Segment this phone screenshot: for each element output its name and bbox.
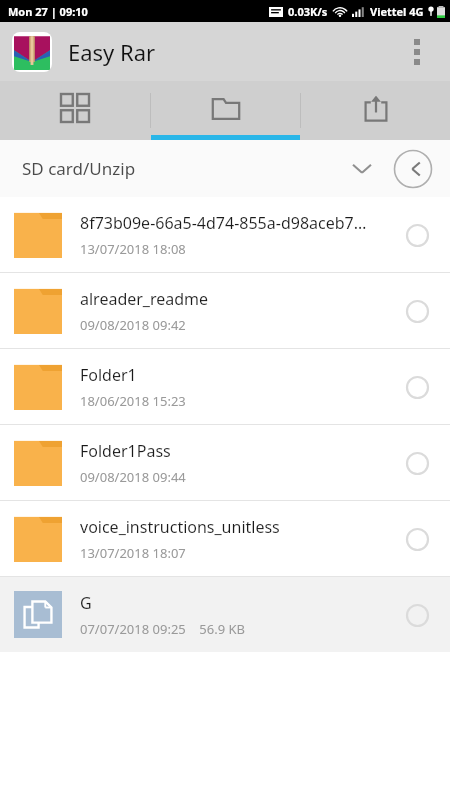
staticText: Viettel 4G bbox=[370, 4, 424, 19]
button[interactable]: Folders bbox=[151, 81, 300, 140]
button[interactable]: Grid view bbox=[0, 81, 150, 140]
button[interactable]: Folder1 bbox=[0, 349, 450, 424]
staticText: Folder1Pass bbox=[80, 440, 171, 462]
button[interactable]: Select Folder1 bbox=[396, 366, 438, 408]
staticText: 0.03K/s bbox=[288, 4, 328, 19]
button[interactable]: Select G bbox=[396, 594, 438, 636]
button[interactable]: Select 8f73b09e-66a5-4d74-855a-d98aceb7… bbox=[396, 214, 438, 256]
button[interactable]: More options bbox=[396, 31, 438, 73]
button[interactable]: Select alreader_readme bbox=[396, 290, 438, 332]
button[interactable]: Select Folder1Pass bbox=[396, 442, 438, 484]
staticText: 18/06/2018 15:23 bbox=[80, 392, 186, 410]
button[interactable] bbox=[12, 32, 52, 72]
staticText: SD card/Unzip bbox=[22, 157, 136, 180]
staticText: 09/08/2018 09:42 bbox=[80, 316, 186, 334]
staticText: 13/07/2018 18:07 bbox=[80, 544, 186, 562]
button[interactable]: Select voice_instructions_unitless bbox=[396, 518, 438, 560]
staticText: G bbox=[80, 592, 92, 614]
staticText: voice_instructions_unitless bbox=[80, 516, 280, 538]
staticText: 13/07/2018 18:08 bbox=[80, 240, 186, 258]
button[interactable]: 8f73b09e-66a5-4d74-855a-d98aceb7… bbox=[0, 197, 450, 272]
staticText: 8f73b09e-66a5-4d74-855a-d98aceb7… bbox=[80, 212, 367, 234]
button[interactable]: alreader_readme bbox=[0, 273, 450, 348]
staticText: 07/07/2018 09:25 56.9 KB bbox=[80, 620, 245, 638]
staticText: Folder1 bbox=[80, 364, 137, 386]
button[interactable]: Share bbox=[301, 81, 450, 140]
staticText: alreader_readme bbox=[80, 288, 209, 310]
staticText: Mon 27 | 09:10 bbox=[8, 4, 88, 19]
button[interactable]: voice_instructions_unitless bbox=[0, 501, 450, 576]
button[interactable]: G bbox=[0, 577, 450, 652]
button[interactable]: Folder1Pass bbox=[0, 425, 450, 500]
staticText: 09/08/2018 09:44 bbox=[80, 468, 186, 486]
button[interactable]: SD card/Unzip bbox=[0, 140, 393, 197]
button[interactable]: Back bbox=[393, 149, 433, 189]
staticText: Easy Rar bbox=[68, 37, 156, 67]
